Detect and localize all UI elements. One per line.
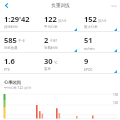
staticText: ℃ [54,60,58,65]
staticText: 心率区间 [4,80,21,85]
staticText: 温度 [44,67,51,71]
button[interactable]: 585 [0,32,40,52]
staticText: PTE [4,67,10,72]
button[interactable]: 1:29'42 [0,11,40,31]
button[interactable]: 51 [80,32,120,52]
button[interactable]: 9 [80,53,120,73]
staticText: 有氧时间 [44,46,58,50]
staticText: EPOC [84,67,93,72]
button[interactable]: 2 [40,32,80,52]
staticText: 152 [84,14,97,24]
staticText: 150 [113,93,119,97]
staticText: 次/分 [58,18,67,23]
staticText: 负重训练 [51,3,70,9]
staticText: 1:29'42 [4,14,30,24]
staticText: 消耗热量 [4,46,18,50]
staticText: 122 [44,14,57,24]
button[interactable]: 152 [80,11,120,31]
staticText: 千卡 [18,39,26,44]
staticText: 次/分 [98,18,107,23]
staticText: 30 [44,56,53,66]
staticText: 平均心率 [44,25,58,29]
staticText: m/min [84,46,95,51]
staticText: 51 [84,35,93,45]
staticText: 585 [4,35,17,45]
staticText: 140 [113,101,119,105]
button[interactable]: Back [0,0,12,11]
button[interactable]: 30 [40,53,80,73]
staticText: 1.6 [4,56,15,66]
staticText: 小时 [50,39,58,44]
staticText: 平均心率 122 次/分 [4,86,32,90]
button[interactable]: More options [108,0,120,11]
staticText: 训练时间 [4,25,18,29]
button[interactable]: 122 [40,11,80,31]
staticText: 最大心率 [84,25,98,29]
staticText: 2 [44,35,49,45]
staticText: 9 [84,56,89,66]
button[interactable]: 1.6 [0,53,40,73]
